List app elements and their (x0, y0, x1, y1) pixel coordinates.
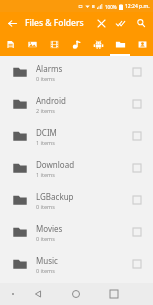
button[interactable]: Back (26, 283, 50, 305)
button[interactable]: Back (5, 16, 19, 30)
button[interactable]: Home (64, 283, 88, 305)
staticText: 0 items (36, 203, 55, 210)
button[interactable]: Audio (65, 34, 87, 56)
button[interactable]: Images (21, 34, 43, 56)
staticText: Music (36, 255, 58, 266)
button[interactable]: Recents (102, 283, 126, 305)
button[interactable]: Documents (0, 34, 21, 56)
button[interactable]: Select all (113, 15, 129, 31)
button[interactable]: Folders (109, 34, 131, 56)
staticText: Movies (36, 223, 63, 234)
staticText: Files & Folders (25, 17, 84, 29)
button[interactable]: Movies (0, 216, 153, 248)
button[interactable]: Alarms (0, 56, 153, 88)
button[interactable]: Menu (8, 289, 18, 299)
staticText: 1 items (36, 171, 55, 178)
button[interactable]: Select Android (129, 96, 145, 112)
button[interactable]: Select Movies (129, 224, 145, 240)
staticText: 0 items (36, 75, 55, 82)
staticText: 100% (105, 4, 117, 10)
button[interactable]: DCIM (0, 120, 153, 152)
button[interactable]: Close (93, 15, 109, 31)
staticText: Android (36, 95, 66, 106)
staticText: 2 items (36, 107, 55, 114)
button[interactable]: Videos (43, 34, 65, 56)
staticText: 0 items (36, 235, 55, 242)
button[interactable]: Select LGBackup (129, 192, 145, 208)
staticText: 12:24 p.m. (125, 3, 150, 10)
button[interactable]: Select DCIM (129, 128, 145, 144)
button[interactable]: Select Download (129, 160, 145, 176)
button[interactable]: Apps (87, 34, 109, 56)
staticText: DCIM (36, 127, 57, 138)
staticText: B (92, 4, 95, 9)
button[interactable]: Contacts (131, 34, 153, 56)
staticText: LGBackup (36, 191, 74, 202)
button[interactable]: Search (133, 15, 149, 31)
button[interactable]: Download (0, 152, 153, 184)
button[interactable]: Select Music (129, 256, 145, 272)
staticText: 1 items (36, 139, 55, 146)
staticText: Alarms (36, 63, 63, 74)
staticText: Download (36, 159, 75, 170)
staticText: 0 items (36, 267, 55, 274)
button[interactable]: Android (0, 88, 153, 120)
button[interactable]: LGBackup (0, 184, 153, 216)
button[interactable]: Select Alarms (129, 64, 145, 80)
button[interactable]: Music (0, 248, 153, 280)
